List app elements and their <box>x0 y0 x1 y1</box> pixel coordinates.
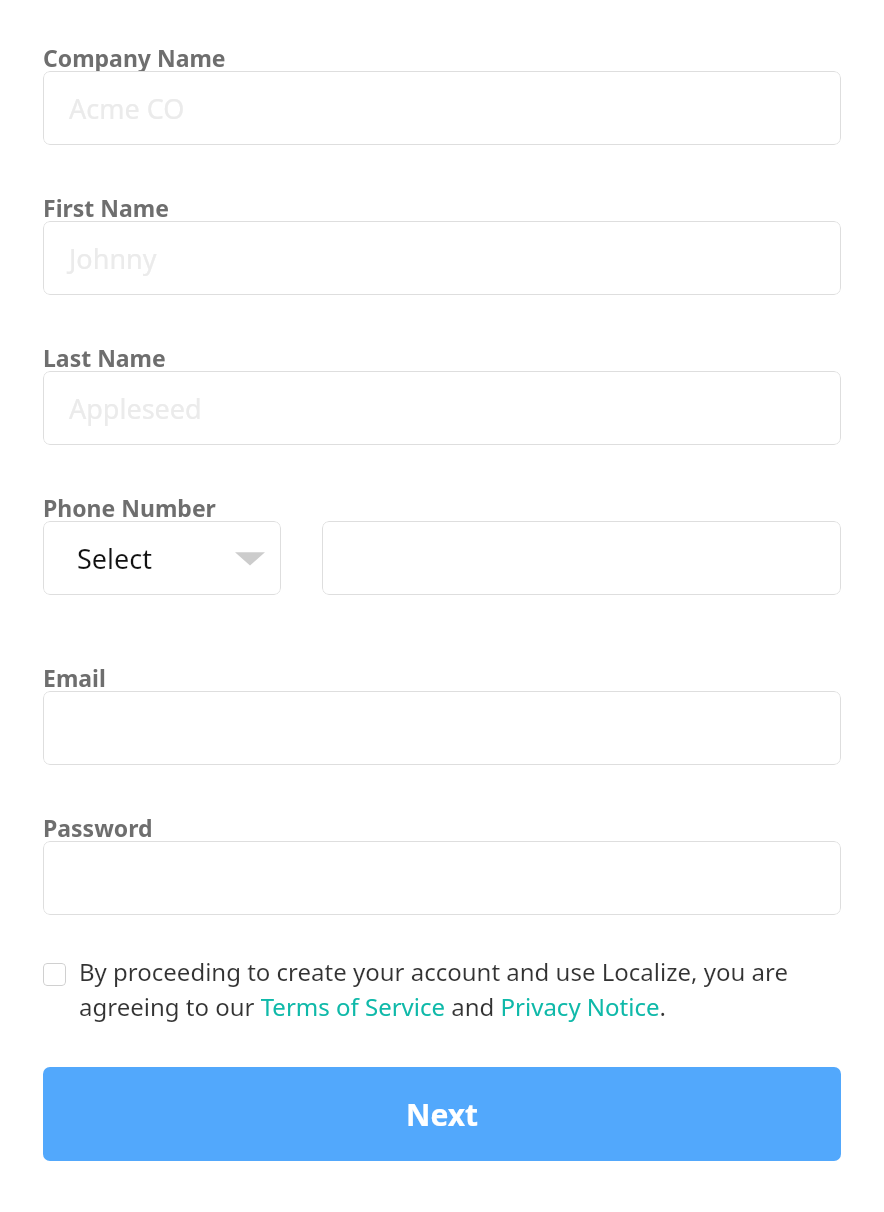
staticText: Select <box>77 540 152 577</box>
staticText: Company Name <box>43 42 226 71</box>
button[interactable]: Appleseed <box>43 371 841 445</box>
staticText: Johnny <box>69 240 157 277</box>
staticText: Email <box>43 662 106 691</box>
button[interactable]: Agree to terms checkbox <box>43 963 66 986</box>
button[interactable] <box>322 521 841 595</box>
button[interactable]: Select <box>43 521 281 595</box>
button[interactable]: Johnny <box>43 221 841 295</box>
staticText: Next <box>406 1094 479 1135</box>
staticText: Phone Number <box>43 492 216 521</box>
staticText: Acme CO <box>69 90 185 127</box>
button[interactable] <box>43 841 841 915</box>
staticText: Password <box>43 812 153 841</box>
staticText: By proceeding to create your account and… <box>79 955 831 1023</box>
button[interactable]: Acme CO <box>43 71 841 145</box>
staticText: First Name <box>43 192 169 221</box>
button[interactable] <box>43 691 841 765</box>
staticText: Last Name <box>43 342 166 371</box>
staticText: Appleseed <box>69 390 202 427</box>
button[interactable]: Next <box>43 1067 841 1161</box>
